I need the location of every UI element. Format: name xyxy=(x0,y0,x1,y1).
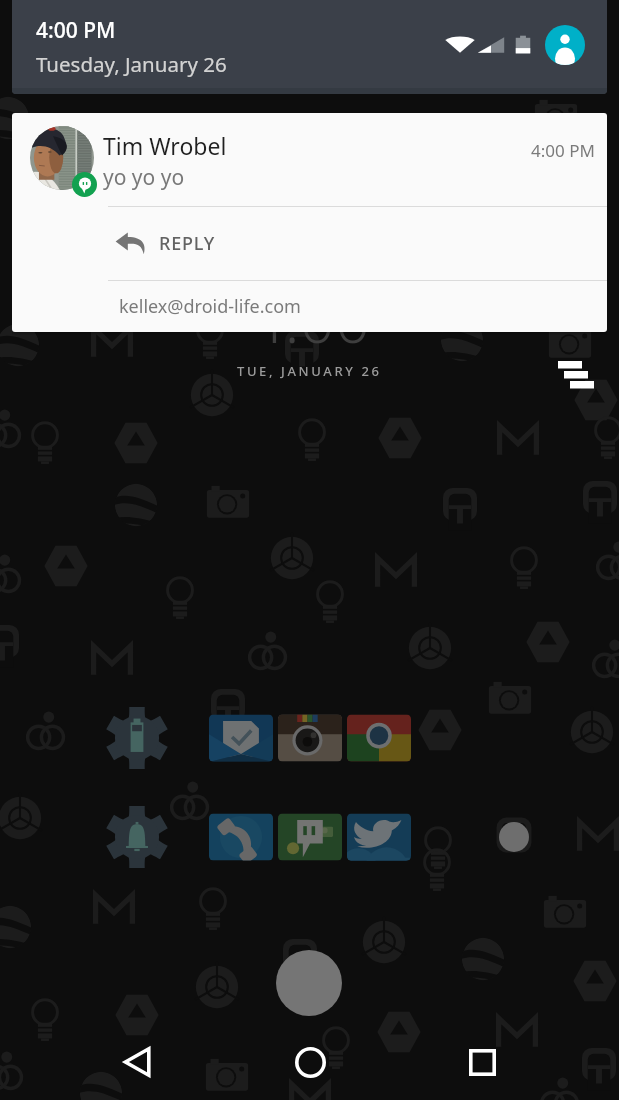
staticText: Tuesday, January 26 xyxy=(36,50,227,78)
button[interactable]: Home xyxy=(272,1024,348,1100)
staticText: kellex@droid-life.com xyxy=(119,294,301,319)
staticText: REPLY xyxy=(159,231,215,256)
staticText: Tim Wrobel xyxy=(103,130,227,161)
button[interactable]: Back xyxy=(100,1024,176,1100)
other: Account xyxy=(545,25,585,65)
staticText: 4:00 xyxy=(249,277,371,361)
button[interactable]: Recents xyxy=(444,1024,520,1100)
staticText: TUE, JANUARY 26 xyxy=(237,362,382,380)
staticText: yo yo yo xyxy=(103,163,185,192)
button[interactable]: REPLY xyxy=(12,207,607,280)
button[interactable]: Tim Wrobel xyxy=(12,113,607,332)
staticText: 4:00 PM xyxy=(531,139,595,162)
staticText: 4:00 PM xyxy=(36,16,116,45)
button[interactable]: 4:00 PM xyxy=(12,0,607,94)
